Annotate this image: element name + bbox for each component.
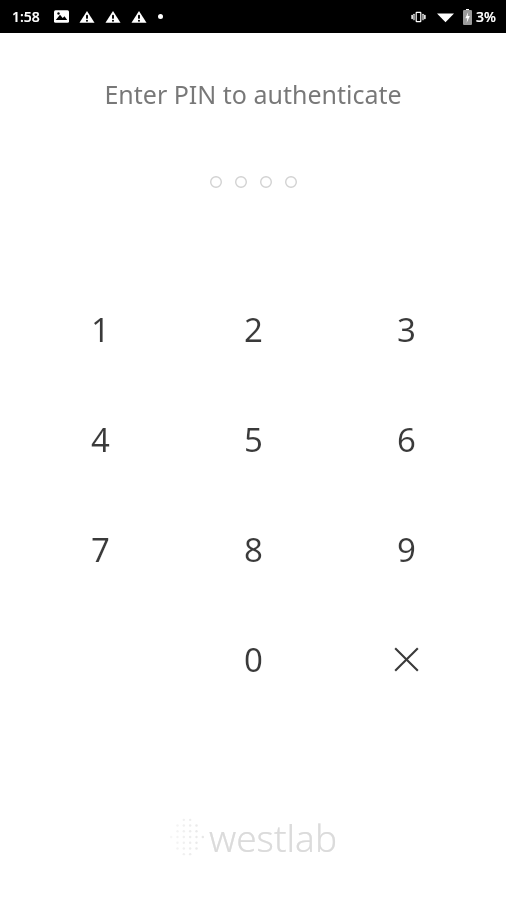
staticText: 8	[244, 527, 263, 572]
button[interactable]: 4	[57, 396, 143, 482]
staticText: 9	[397, 527, 416, 572]
staticText: 2	[244, 307, 263, 352]
staticText: 0	[244, 637, 263, 682]
staticText: 4	[91, 417, 110, 462]
staticText: Enter PIN to authenticate	[104, 77, 402, 111]
button[interactable]: 3	[363, 286, 449, 372]
staticText: 1:58	[12, 7, 40, 26]
staticText: 5	[244, 417, 263, 462]
button[interactable]: 8	[210, 506, 296, 592]
staticText: westlab	[209, 812, 338, 862]
staticText: 7	[91, 527, 110, 572]
button[interactable]: 0	[210, 616, 296, 702]
button[interactable]: 9	[363, 506, 449, 592]
staticText: 3%	[476, 7, 496, 26]
button[interactable]: Delete	[374, 627, 438, 691]
button[interactable]: 5	[210, 396, 296, 482]
button[interactable]: 6	[363, 396, 449, 482]
staticText: 1	[91, 307, 110, 352]
button[interactable]: 2	[210, 286, 296, 372]
button[interactable]: 7	[57, 506, 143, 592]
staticText: 3	[397, 307, 416, 352]
button[interactable]: 1	[57, 286, 143, 372]
staticText: 6	[397, 417, 416, 462]
